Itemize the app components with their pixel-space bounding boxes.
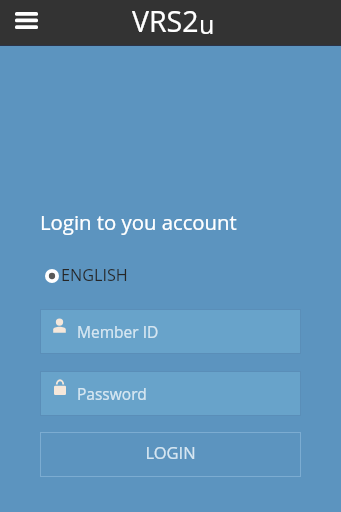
staticText: Member ID <box>77 321 159 342</box>
staticText: ENGLISH <box>61 264 128 284</box>
staticText: Password <box>77 383 147 404</box>
button[interactable]: ENGLISH <box>45 266 130 286</box>
staticText: u <box>199 7 215 41</box>
staticText: LOGIN <box>145 441 196 463</box>
button[interactable]: Password <box>40 371 301 416</box>
button[interactable]: Member ID <box>40 309 301 354</box>
staticText: Login to you account <box>40 208 237 236</box>
staticText: VRS2 <box>132 2 199 41</box>
button[interactable]: LOGIN <box>40 432 301 477</box>
button[interactable]: Open navigation menu <box>15 12 38 30</box>
